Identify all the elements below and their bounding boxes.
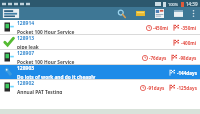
staticText: Do lots of work and do it cheaply: [17, 74, 96, 79]
staticText: -76days: [149, 55, 167, 61]
staticText: -98days: [179, 55, 197, 61]
staticText: 128913: [17, 35, 35, 42]
staticText: Pocket 100 Hour Service: [17, 59, 75, 64]
staticText: -350mi: [181, 25, 197, 31]
button[interactable]: More options: [188, 7, 199, 20]
staticText: -400mi: [181, 40, 197, 46]
staticText: 128914: [17, 20, 35, 27]
button[interactable]: 128903: [0, 65, 200, 79]
button[interactable]: App logo home: [2, 8, 20, 19]
staticText: pipe leak: [17, 44, 39, 49]
staticText: -450mi: [153, 25, 169, 31]
button[interactable]: Reports: [154, 7, 165, 20]
staticText: 128902: [17, 80, 35, 87]
staticText: 14:39: [186, 1, 198, 7]
button[interactable]: 128907: [0, 50, 200, 64]
staticText: 128907: [17, 50, 35, 57]
button[interactable]: 128902: [0, 80, 200, 94]
staticText: 100%: [168, 2, 179, 7]
staticText: -125days: [177, 85, 197, 91]
staticText: Pocket 100 Hour Service: [17, 29, 75, 34]
staticText: Annual PAT Testing: [17, 89, 63, 94]
staticText: -91days: [147, 85, 165, 91]
button[interactable]: 128913: [0, 35, 200, 49]
button[interactable]: 128914: [0, 20, 200, 34]
button[interactable]: Search: [116, 7, 127, 20]
button[interactable]: Folder: [135, 7, 146, 20]
staticText: 128903: [17, 65, 35, 72]
button[interactable]: Window: [173, 7, 184, 20]
staticText: -144days: [177, 70, 197, 76]
